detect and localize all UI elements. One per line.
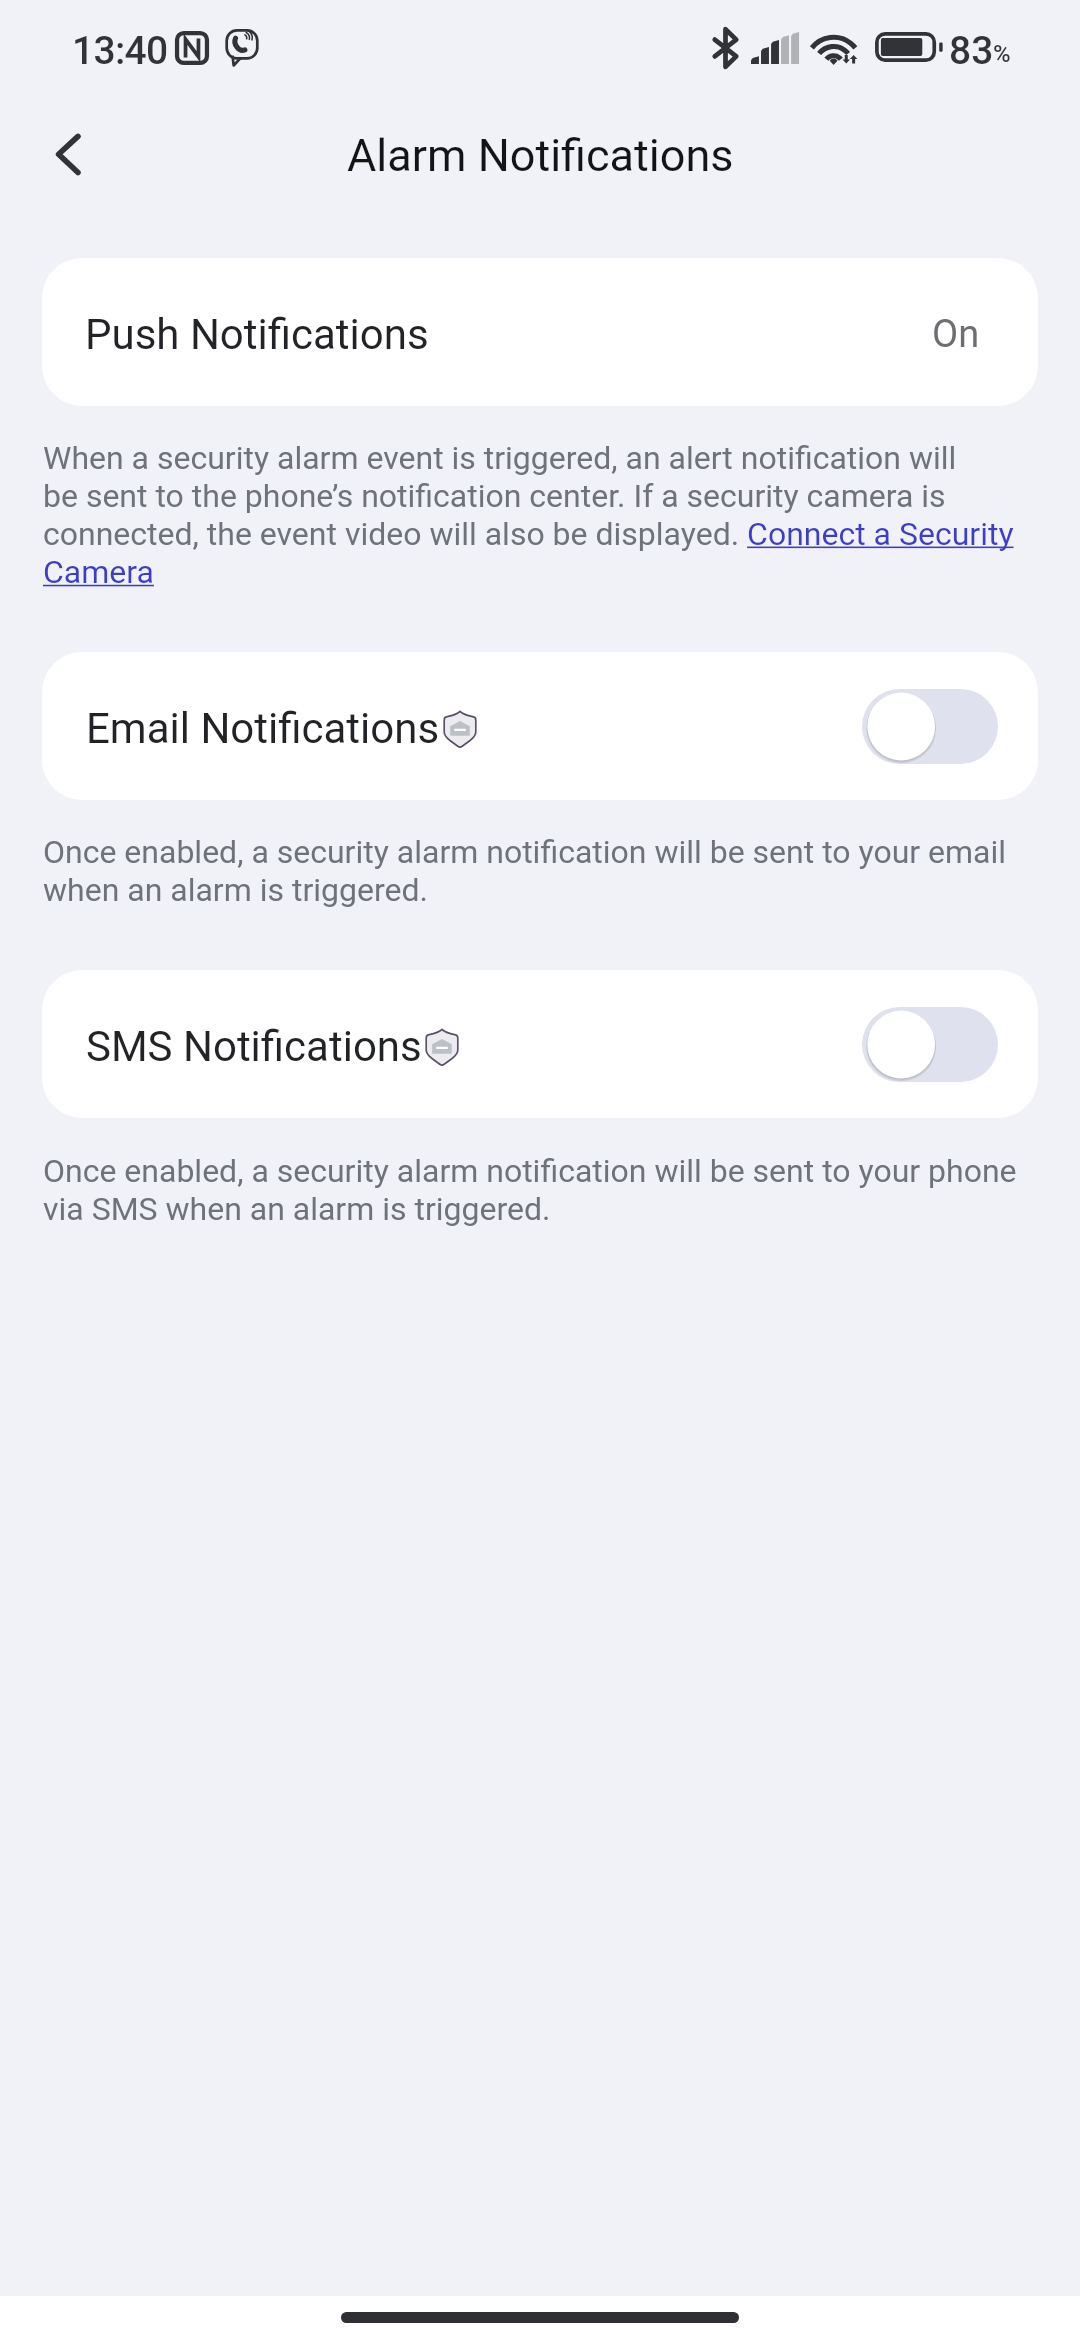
staticText: Email Notifications (86, 704, 440, 753)
staticText: Once enabled, a security alarm notificat… (43, 833, 1007, 909)
staticText: 13:40 (72, 28, 168, 74)
button[interactable]: SMS Notifications (42, 970, 1038, 1118)
button[interactable]: Toggle Email Notifications (862, 689, 998, 764)
staticText: 83 (949, 28, 994, 74)
button[interactable]: Back (24, 117, 100, 193)
staticText: When a security alarm event is triggered… (43, 439, 1014, 591)
staticText: On (932, 312, 980, 357)
staticText: Push Notifications (85, 310, 429, 359)
staticText: % (993, 40, 1011, 68)
staticText: Alarm Notifications (347, 129, 734, 182)
button[interactable]: Connect a Security Camera (750, 518, 1060, 557)
staticText: SMS Notifications (86, 1022, 422, 1071)
button[interactable]: Toggle SMS Notifications (862, 1007, 998, 1082)
button[interactable]: Connect a Security Camera (43, 557, 156, 596)
staticText: Once enabled, a security alarm notificat… (43, 1152, 1017, 1228)
button[interactable]: Push Notifications (42, 258, 1038, 406)
button[interactable]: Email Notifications (42, 652, 1038, 800)
